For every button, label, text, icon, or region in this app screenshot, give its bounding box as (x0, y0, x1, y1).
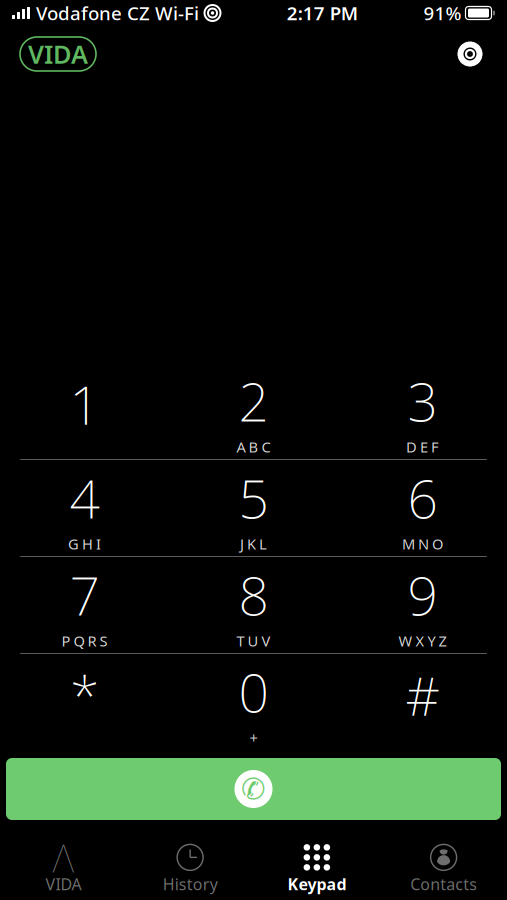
staticText: Vodafone CZ Wi-Fi (36, 1, 199, 25)
button[interactable]: 2 (169, 363, 338, 459)
button[interactable]: Contacts (380, 841, 507, 897)
staticText: TUV (236, 631, 270, 651)
staticText: 1 (69, 369, 99, 439)
staticText: 91% (423, 1, 461, 25)
button[interactable]: # (338, 654, 507, 750)
staticText: VIDA (28, 37, 88, 71)
staticText: History (163, 873, 218, 895)
staticText: VIDA (45, 873, 81, 895)
staticText: 4 (69, 462, 99, 533)
button[interactable]: 4 (0, 460, 169, 556)
staticText: Λ (52, 832, 74, 883)
staticText: * (70, 660, 99, 730)
staticText: 0 (238, 656, 268, 727)
staticText: Keypad (287, 873, 346, 895)
button[interactable]: Λ (0, 841, 127, 897)
staticText: 5 (238, 462, 268, 533)
staticText: PQRS (61, 631, 107, 651)
button[interactable]: VIDA (20, 37, 96, 71)
staticText: 8 (238, 559, 268, 630)
staticText: 2 (238, 365, 268, 436)
button[interactable]: 1 (0, 363, 169, 459)
staticText: + (249, 728, 257, 748)
staticText: 2:17 PM (287, 1, 358, 25)
staticText: 7 (69, 559, 99, 630)
button[interactable]: 9 (338, 557, 507, 653)
staticText: # (405, 660, 439, 730)
staticText: Contacts (410, 873, 477, 895)
button[interactable]: 0 (169, 654, 338, 750)
staticText: MNO (402, 534, 443, 554)
staticText: ABC (236, 437, 270, 457)
staticText: GHI (68, 534, 101, 554)
staticText: DEF (406, 437, 439, 457)
staticText: 6 (407, 462, 437, 533)
staticText: ✆ (241, 772, 266, 806)
button[interactable]: Settings (453, 37, 487, 71)
button[interactable]: Call (0, 758, 507, 820)
button[interactable]: History (127, 841, 254, 897)
button[interactable]: Keypad (253, 841, 380, 897)
button[interactable]: 6 (338, 460, 507, 556)
staticText: 3 (407, 365, 437, 436)
button[interactable]: 7 (0, 557, 169, 653)
staticText: 9 (407, 559, 437, 630)
staticText: WXYZ (398, 631, 446, 651)
button[interactable]: 8 (169, 557, 338, 653)
button[interactable]: 5 (169, 460, 338, 556)
button[interactable]: * (0, 654, 169, 750)
staticText: JKL (240, 534, 267, 554)
button[interactable]: 3 (338, 363, 507, 459)
